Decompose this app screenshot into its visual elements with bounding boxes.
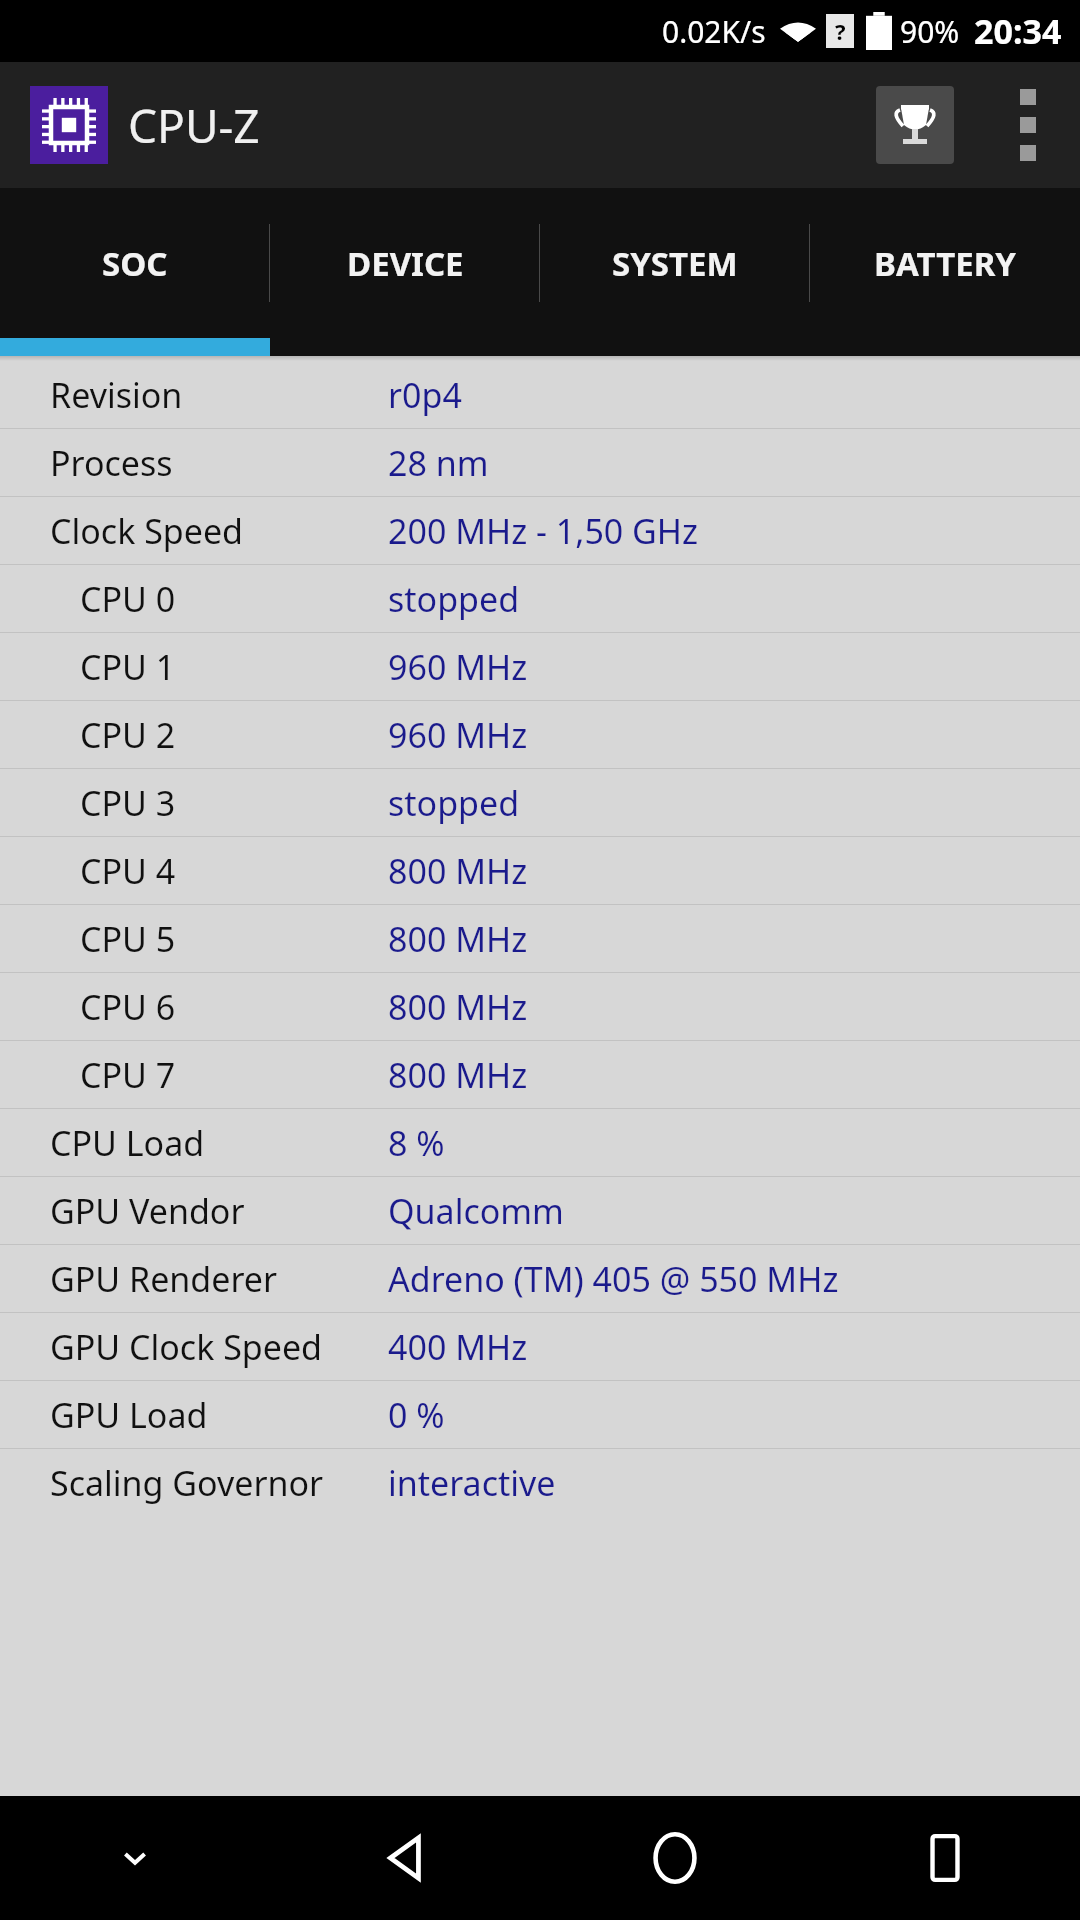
staticText: Qualcomm: [388, 1188, 564, 1234]
staticText: stopped: [388, 576, 520, 622]
staticText: interactive: [388, 1460, 556, 1506]
staticText: stopped: [388, 780, 520, 826]
staticText: CPU 2: [80, 712, 176, 758]
staticText: GPU Load: [50, 1392, 208, 1438]
staticText: 960 MHz: [388, 712, 528, 758]
staticText: 400 MHz: [388, 1324, 528, 1370]
staticText: ?: [835, 16, 846, 46]
staticText: GPU Renderer: [50, 1256, 278, 1302]
staticText: 960 MHz: [388, 644, 528, 690]
button[interactable]: Recent apps: [810, 1796, 1080, 1920]
staticText: CPU 0: [80, 576, 176, 622]
staticText: 800 MHz: [388, 1052, 528, 1098]
button[interactable]: GPU Load: [0, 1381, 1080, 1448]
staticText: r0p4: [388, 372, 462, 418]
staticText: 8 %: [388, 1120, 445, 1166]
button[interactable]: SYSTEM: [540, 188, 810, 338]
button[interactable]: CPU Load: [0, 1109, 1080, 1176]
staticText: Revision: [50, 372, 183, 418]
staticText: CPU 3: [80, 780, 176, 826]
staticText: Adreno (TM) 405 @ 550 MHz: [388, 1256, 839, 1302]
staticText: Process: [50, 440, 173, 486]
button[interactable]: GPU Renderer: [0, 1245, 1080, 1312]
button[interactable]: GPU Clock Speed: [0, 1313, 1080, 1380]
button[interactable]: Scaling Governor: [0, 1449, 1080, 1516]
staticText: GPU Clock Speed: [50, 1324, 322, 1370]
staticText: CPU 6: [80, 984, 176, 1030]
button[interactable]: Benchmark ranking: [876, 86, 954, 164]
staticText: 28 nm: [388, 440, 489, 486]
button[interactable]: Process: [0, 429, 1080, 496]
staticText: CPU-Z: [128, 94, 260, 157]
button[interactable]: Back: [270, 1796, 540, 1920]
staticText: Scaling Governor: [50, 1460, 324, 1506]
button[interactable]: CPU 0: [0, 565, 1080, 632]
button[interactable]: Hide keyboard: [0, 1796, 270, 1920]
button[interactable]: Clock Speed: [0, 497, 1080, 564]
button[interactable]: BATTERY: [810, 188, 1080, 338]
staticText: DEVICE: [347, 241, 464, 286]
staticText: 0.02K/s: [662, 11, 766, 52]
button[interactable]: CPU 3: [0, 769, 1080, 836]
staticText: BATTERY: [874, 241, 1016, 286]
staticText: 200 MHz - 1,50 GHz: [388, 508, 699, 554]
staticText: 800 MHz: [388, 848, 528, 894]
staticText: CPU 7: [80, 1052, 176, 1098]
staticText: CPU 4: [80, 848, 176, 894]
button[interactable]: Home: [540, 1796, 810, 1920]
staticText: 800 MHz: [388, 916, 528, 962]
button[interactable]: CPU 1: [0, 633, 1080, 700]
staticText: Clock Speed: [50, 508, 243, 554]
staticText: CPU 5: [80, 916, 176, 962]
staticText: SOC: [102, 241, 168, 286]
button[interactable]: CPU 4: [0, 837, 1080, 904]
staticText: 20:34: [974, 8, 1062, 54]
button[interactable]: CPU 2: [0, 701, 1080, 768]
staticText: 0 %: [388, 1392, 445, 1438]
staticText: GPU Vendor: [50, 1188, 245, 1234]
button[interactable]: CPU 5: [0, 905, 1080, 972]
staticText: 90%: [900, 11, 960, 52]
button[interactable]: SOC: [0, 188, 270, 338]
button[interactable]: Revision: [0, 361, 1080, 428]
staticText: CPU Load: [50, 1120, 205, 1166]
button[interactable]: CPU 6: [0, 973, 1080, 1040]
button[interactable]: CPU-Z app icon: [30, 86, 108, 164]
staticText: CPU 1: [80, 644, 176, 690]
button[interactable]: DEVICE: [270, 188, 540, 338]
button[interactable]: More options: [1000, 86, 1056, 164]
staticText: 800 MHz: [388, 984, 528, 1030]
button[interactable]: CPU 7: [0, 1041, 1080, 1108]
staticText: SYSTEM: [612, 241, 738, 286]
button[interactable]: GPU Vendor: [0, 1177, 1080, 1244]
